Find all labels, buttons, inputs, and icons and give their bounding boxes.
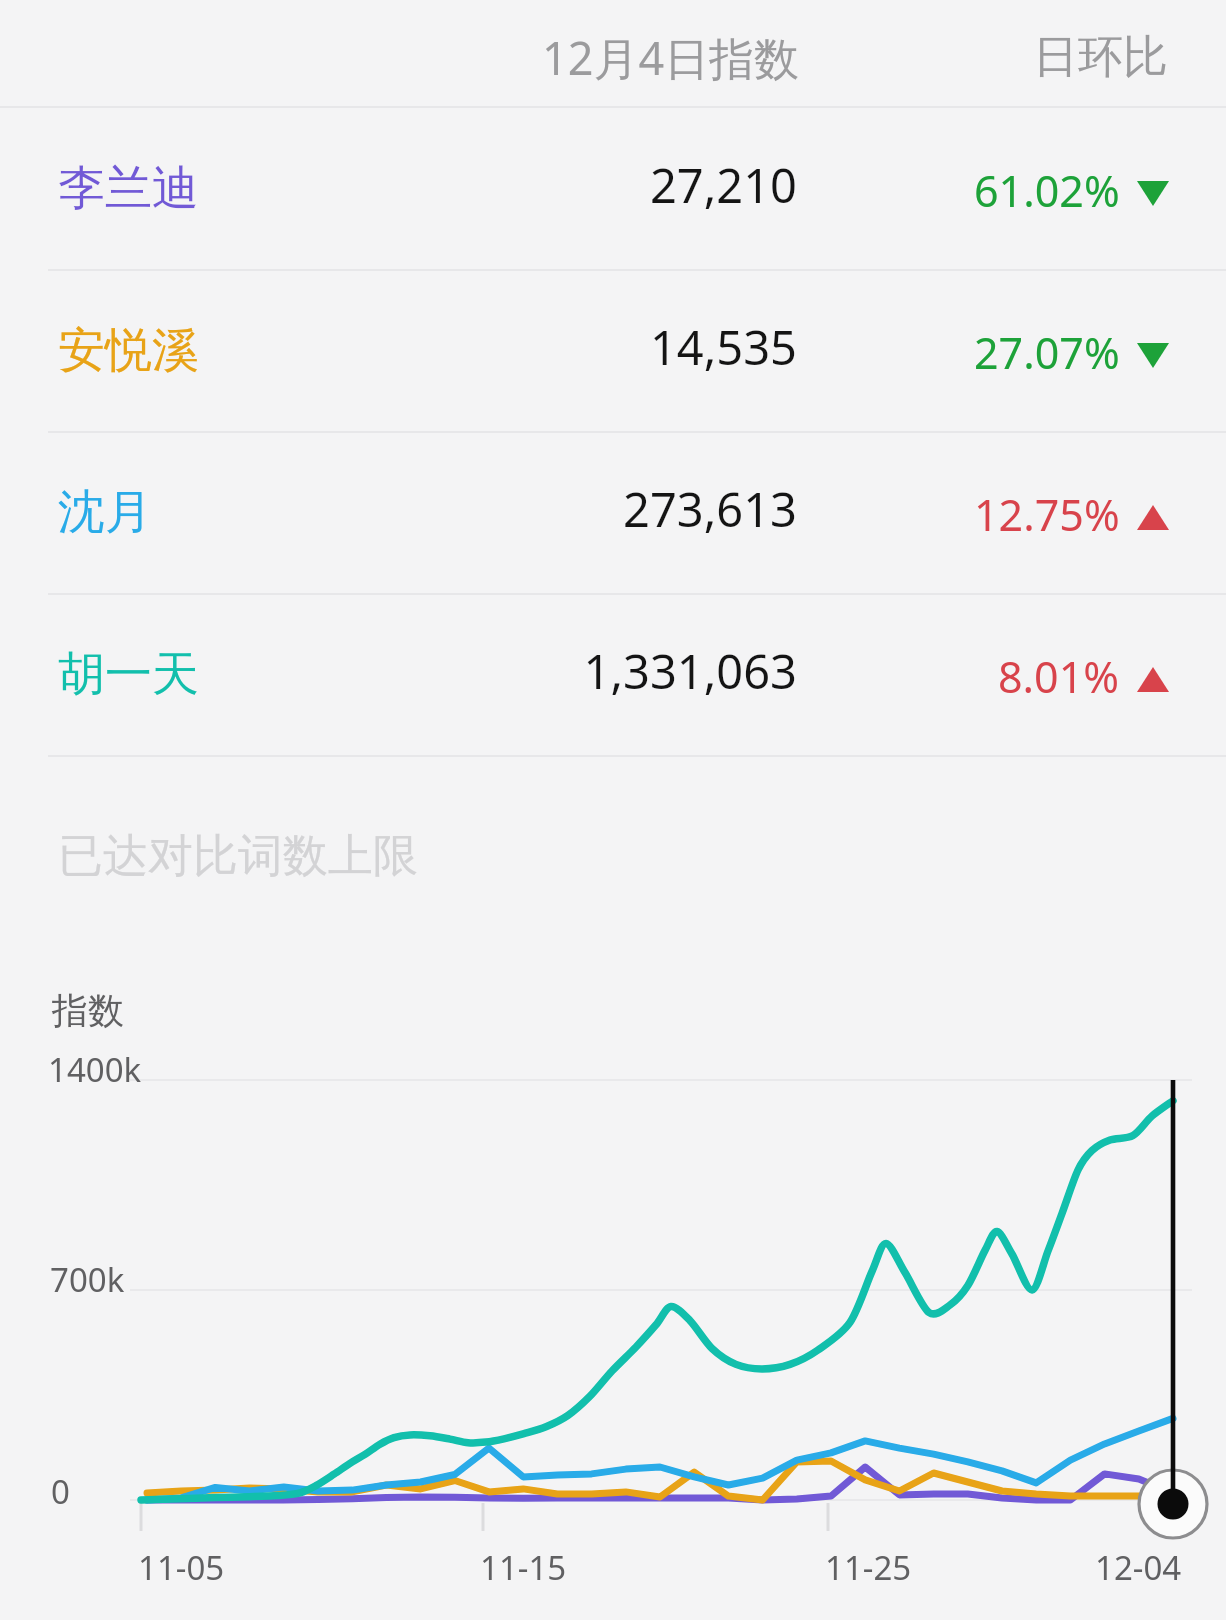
staticText: 12-04 (1095, 1545, 1182, 1590)
staticText: 1400k (48, 1047, 142, 1092)
staticText: 1,331,063 (0, 639, 797, 703)
staticText: 12月4日指数 (542, 27, 800, 88)
staticText: 14,535 (0, 315, 797, 379)
button[interactable]: 李兰迪 (0, 107, 1226, 269)
button[interactable]: 沈月 (0, 431, 1226, 593)
staticText: 11-15 (480, 1545, 567, 1590)
staticText: 已达对比词数上限 (58, 828, 418, 885)
staticText: 700k (50, 1257, 125, 1302)
staticText: 指数 (52, 988, 124, 1033)
staticText: 胡一天 (58, 645, 199, 704)
staticText: 安悦溪 (58, 321, 199, 380)
staticText: 11-05 (138, 1545, 225, 1590)
staticText: 李兰迪 (58, 159, 199, 218)
button[interactable]: 安悦溪 (0, 269, 1226, 431)
staticText: 273,613 (0, 477, 797, 541)
button[interactable]: 指数趋势图 (0, 1040, 1226, 1540)
button[interactable]: 胡一天 (0, 593, 1226, 755)
staticText: 日环比 (1033, 29, 1168, 86)
staticText: 12.75% (974, 485, 1120, 544)
staticText: 0 (51, 1469, 70, 1514)
staticText: 61.02% (974, 161, 1120, 220)
staticText: 11-25 (825, 1545, 912, 1590)
staticText: 沈月 (58, 483, 152, 542)
staticText: 27,210 (0, 153, 797, 217)
staticText: 8.01% (998, 647, 1120, 706)
staticText: 27.07% (974, 323, 1120, 382)
